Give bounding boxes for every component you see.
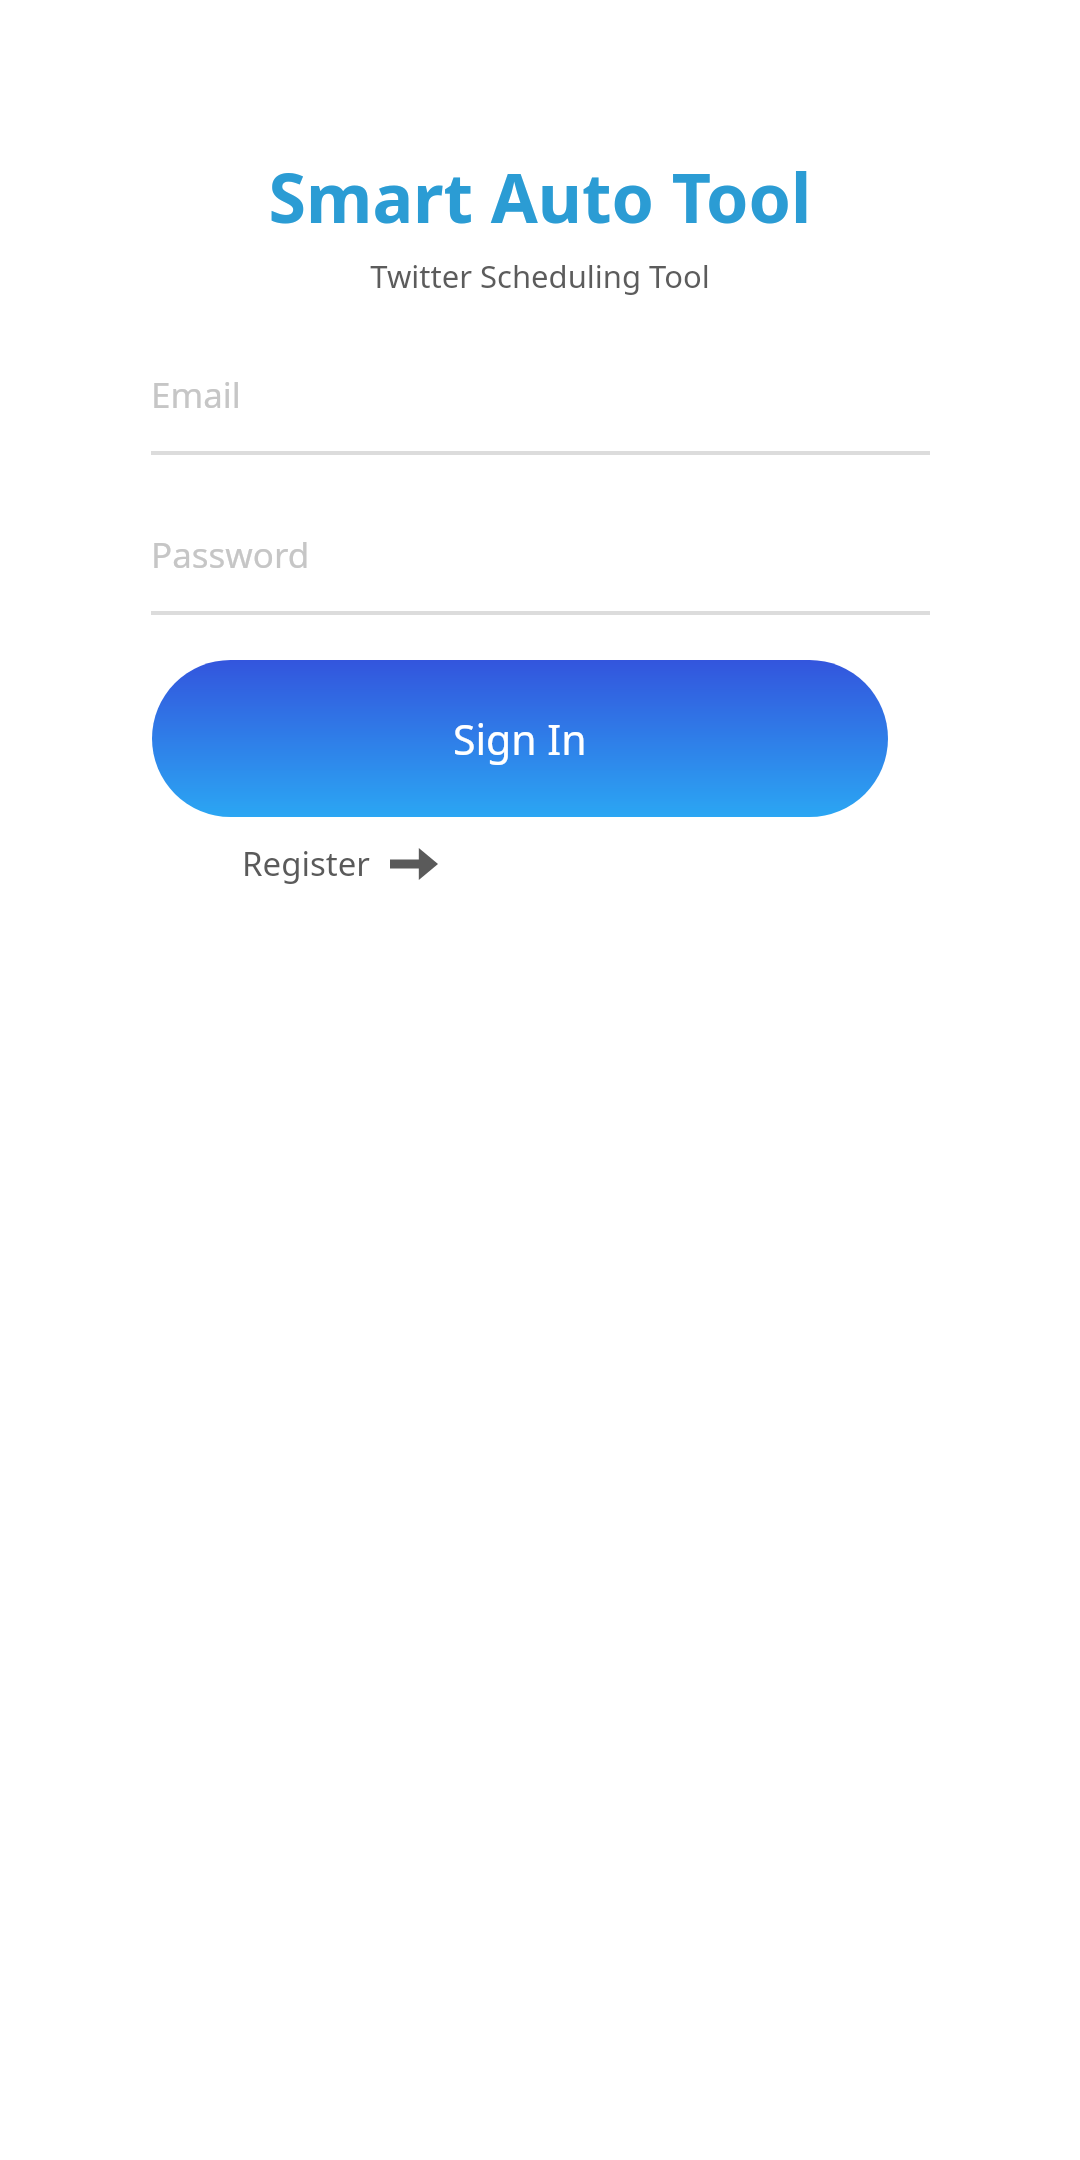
- staticText: Sign In: [453, 711, 587, 767]
- staticText: Twitter Scheduling Tool: [0, 255, 1080, 297]
- button[interactable]: Sign In: [152, 660, 888, 817]
- other: Register: [390, 847, 438, 881]
- staticText: Password: [151, 531, 310, 579]
- button[interactable]: Register: [226, 831, 454, 896]
- staticText: Register: [242, 841, 370, 886]
- staticText: Smart Auto Tool: [0, 150, 1080, 243]
- button[interactable]: Email: [151, 355, 930, 455]
- button[interactable]: Password: [151, 515, 930, 615]
- staticText: Email: [151, 371, 241, 419]
